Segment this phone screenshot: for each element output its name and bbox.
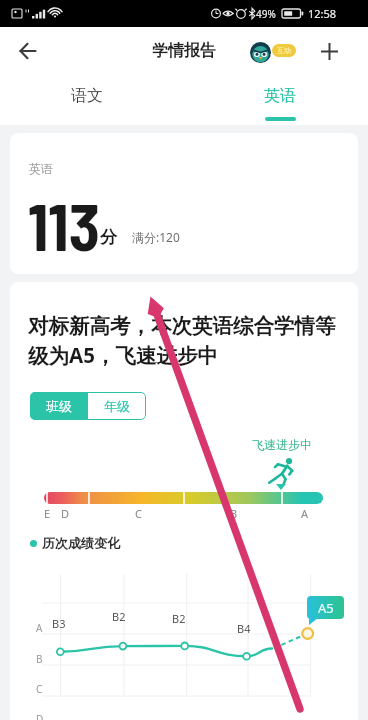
staticText: 年级: [104, 398, 130, 414]
staticText: B2: [112, 609, 126, 624]
staticText: 113: [28, 187, 100, 264]
staticText: E: [44, 506, 51, 521]
staticText: B4: [237, 621, 251, 636]
staticText: A5: [318, 599, 334, 617]
button[interactable]: Add: [311, 33, 347, 69]
staticText: 分: [100, 227, 117, 248]
button[interactable]: [48, 75, 128, 125]
staticText: B: [36, 652, 43, 666]
staticText: 互动: [277, 46, 291, 55]
staticText: 历次成绩变化: [42, 535, 120, 551]
staticText: 飞速进步中: [252, 437, 312, 452]
staticText: C: [135, 506, 142, 521]
button[interactable]: A5: [307, 596, 344, 619]
staticText: B: [230, 506, 238, 521]
staticText: 英语: [29, 161, 53, 176]
staticText: 语文: [71, 86, 103, 106]
staticText: 满分:120: [132, 229, 180, 245]
button[interactable]: 英语: [10, 133, 358, 274]
staticText: D: [36, 712, 44, 720]
button[interactable]: [240, 75, 320, 125]
staticText: 英语: [264, 86, 296, 106]
button[interactable]: 班级: [30, 392, 88, 420]
staticText: A: [301, 506, 309, 521]
staticText: 49%: [256, 7, 276, 21]
button[interactable]: Interactive mascot: [249, 41, 301, 63]
button[interactable]: 年级: [88, 392, 146, 420]
button[interactable]: Back: [8, 31, 48, 71]
staticText: 12:58: [308, 6, 337, 21]
staticText: B2: [172, 611, 186, 626]
staticText: A: [36, 621, 43, 635]
staticText: 班级: [46, 398, 72, 414]
staticText: 对标新高考，本次英语综合学情等级为A5，飞速进步中: [28, 313, 344, 369]
staticText: 学情报告: [152, 41, 216, 61]
staticText: D: [61, 506, 70, 521]
staticText: C: [36, 682, 43, 696]
staticText: B3: [52, 616, 66, 631]
